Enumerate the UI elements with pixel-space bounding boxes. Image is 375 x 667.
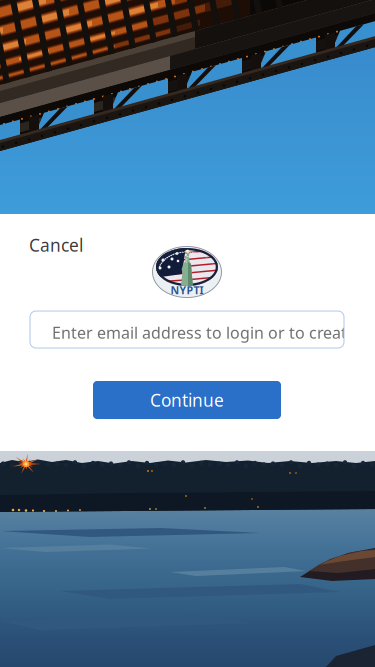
staticText: NYPTI bbox=[170, 283, 203, 297]
staticText: Cancel bbox=[29, 233, 83, 256]
button[interactable]: Cancel bbox=[29, 234, 85, 256]
button[interactable]: Continue bbox=[93, 381, 281, 419]
button[interactable]: Enter email address to login or to creat… bbox=[30, 311, 344, 348]
staticText: Continue bbox=[150, 388, 224, 411]
staticText: Enter email address to login or to creat… bbox=[52, 322, 375, 343]
